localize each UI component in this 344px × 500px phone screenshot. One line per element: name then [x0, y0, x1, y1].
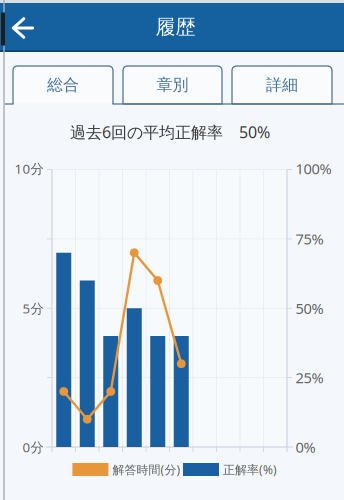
staticText: 正解率(%): [223, 461, 277, 477]
button[interactable]: 章別: [123, 66, 222, 104]
button[interactable]: 総合: [13, 66, 113, 104]
staticText: 0%: [295, 437, 315, 457]
button[interactable]: 詳細: [232, 66, 332, 104]
staticText: 過去6回の平均正解率 50%: [70, 121, 270, 143]
staticText: 詳細: [266, 75, 298, 95]
staticText: 100%: [295, 159, 331, 178]
staticText: 解答時間(分): [112, 461, 180, 477]
staticText: 5分: [22, 299, 43, 317]
staticText: 75%: [295, 229, 323, 249]
staticText: 総合: [47, 75, 79, 95]
staticText: 0分: [22, 438, 43, 456]
staticText: 50%: [295, 298, 323, 318]
staticText: 章別: [156, 75, 188, 95]
button[interactable]: Back: [0, 6, 46, 50]
staticText: 履歴: [155, 15, 195, 39]
staticText: 25%: [295, 368, 323, 387]
staticText: 10分: [14, 160, 43, 177]
